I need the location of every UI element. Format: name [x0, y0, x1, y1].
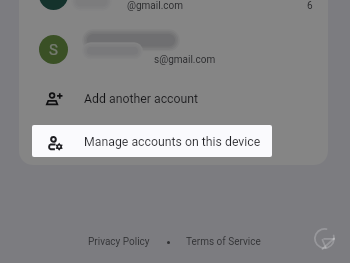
staticText: s@gmail.com	[154, 54, 216, 66]
button[interactable]: S	[19, 22, 328, 76]
button[interactable]: Add another account	[19, 77, 328, 121]
button[interactable]: Terms of Service	[186, 236, 261, 248]
button[interactable]: Manage accounts on this device	[32, 125, 272, 157]
other: Site logo	[314, 228, 335, 249]
staticText: S	[49, 41, 58, 59]
staticText: Add another account	[84, 92, 199, 106]
button[interactable]: Privacy Policy	[88, 236, 150, 248]
staticText: Manage accounts on this device	[84, 135, 261, 149]
staticText: 6	[307, 0, 313, 12]
staticText: @gmail.com	[127, 0, 184, 12]
button[interactable]: @gmail.com	[19, 0, 328, 22]
